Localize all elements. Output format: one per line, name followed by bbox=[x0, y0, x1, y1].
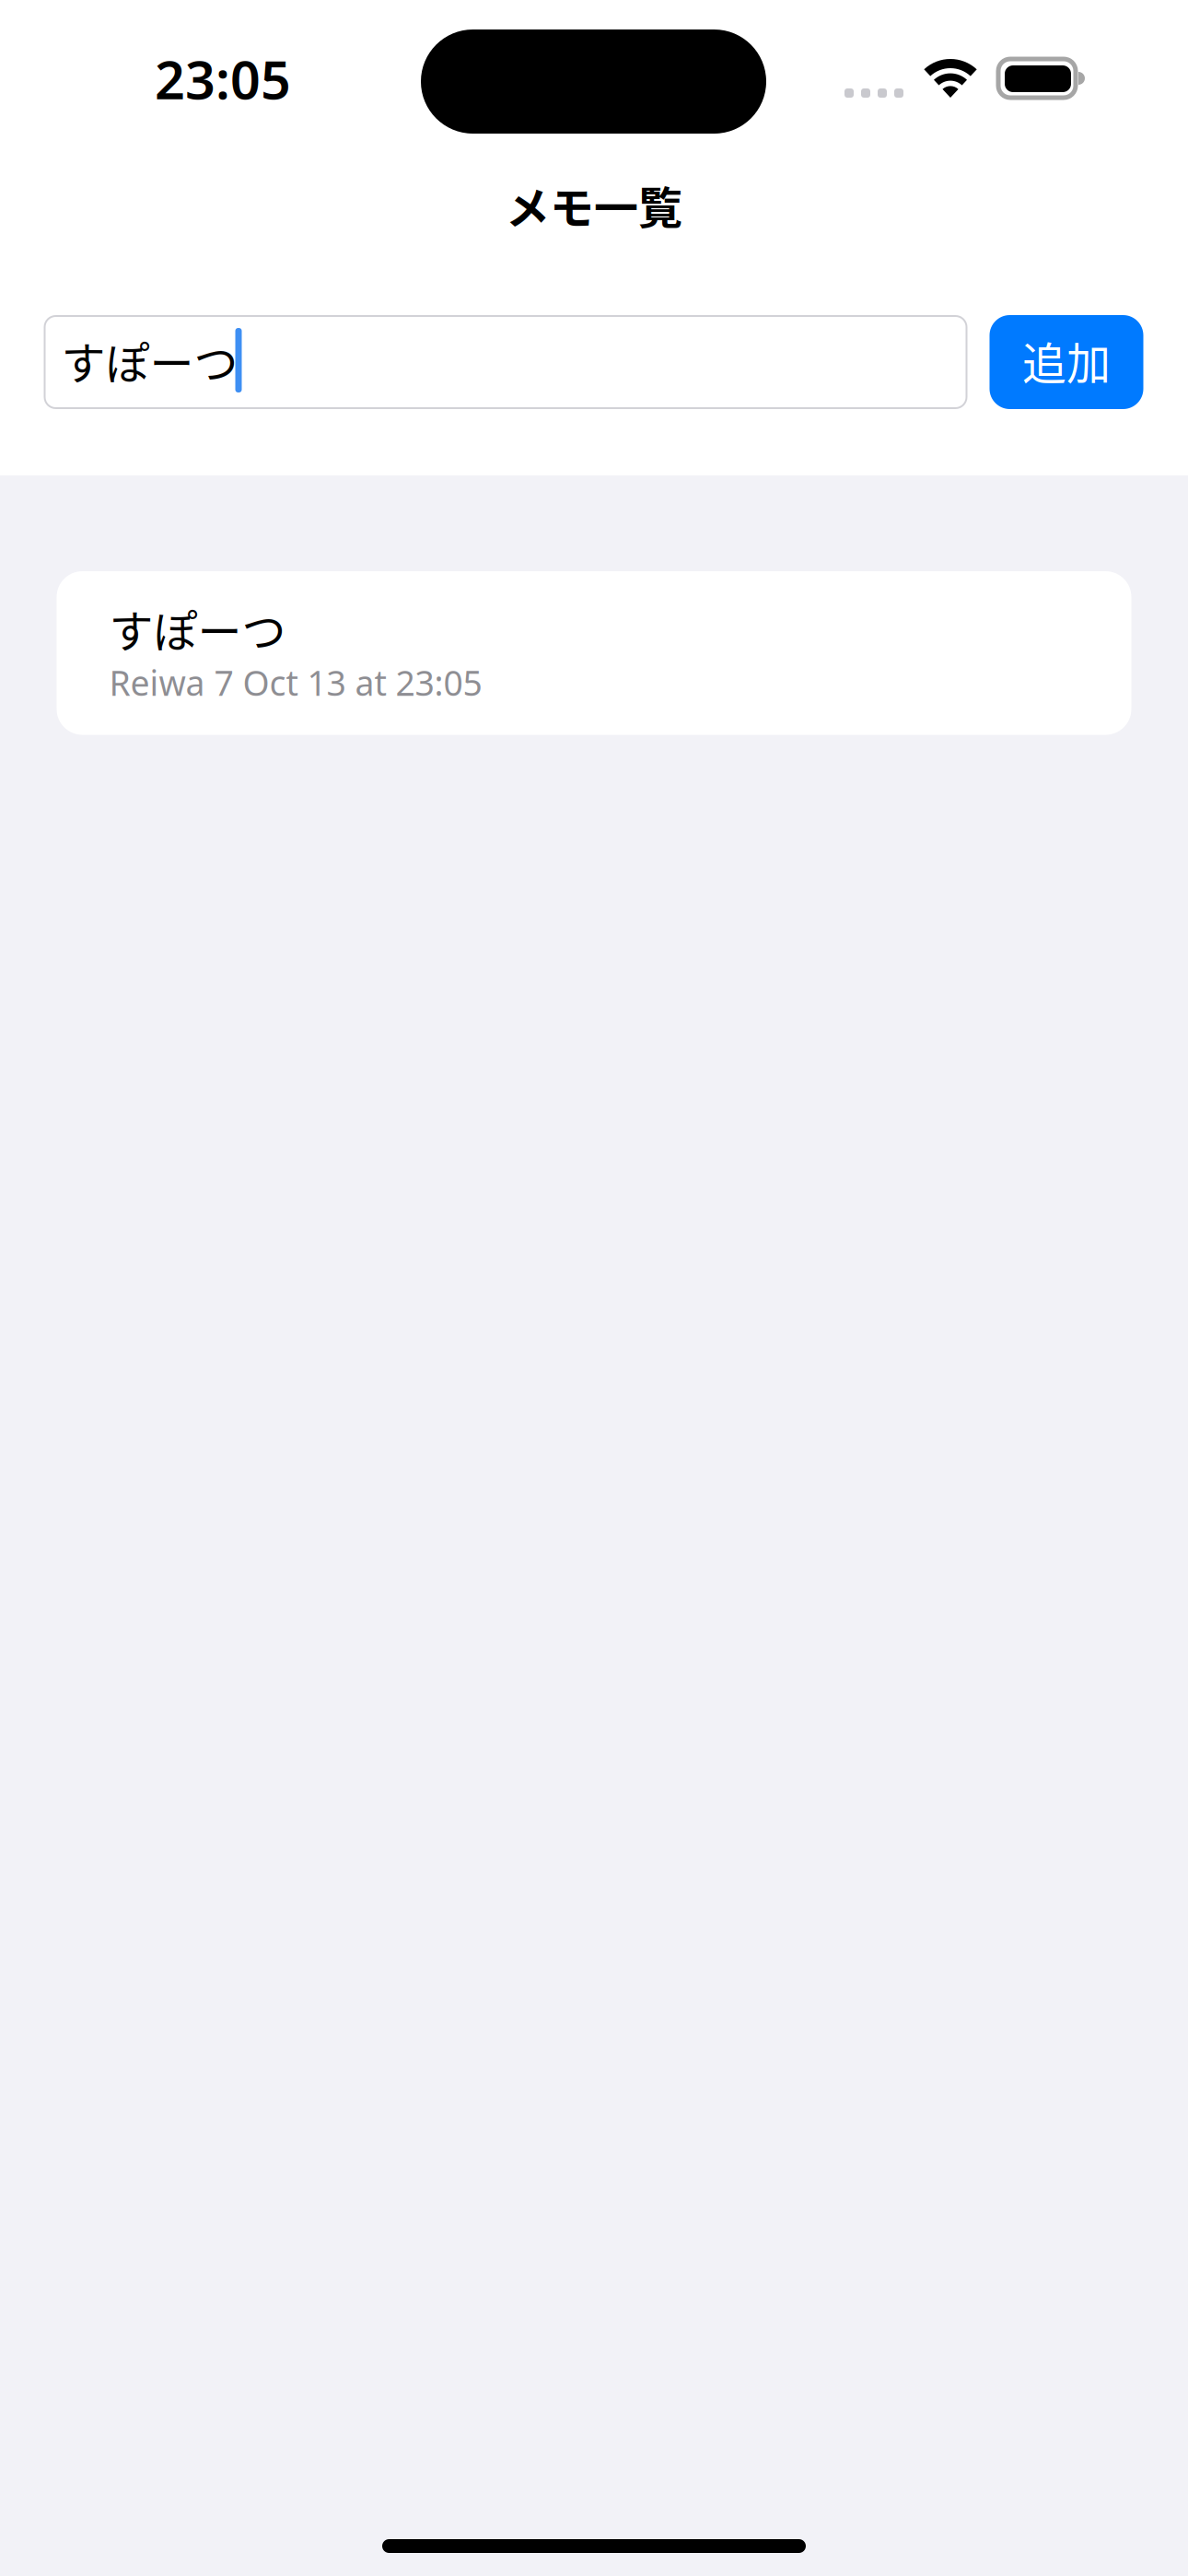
staticText: すぽーつ bbox=[61, 328, 238, 392]
staticText: メモ一覧 bbox=[506, 172, 682, 237]
button[interactable]: 追加 bbox=[990, 315, 1143, 409]
staticText: Reiwa 7 Oct 13 at 23:05 bbox=[109, 660, 482, 705]
staticText: 追加 bbox=[1022, 328, 1111, 392]
button[interactable]: すぽーつ bbox=[57, 571, 1131, 735]
staticText: すぽーつ bbox=[109, 596, 286, 660]
staticText: 23:05 bbox=[155, 44, 291, 114]
button[interactable]: すぽーつ bbox=[45, 316, 967, 408]
